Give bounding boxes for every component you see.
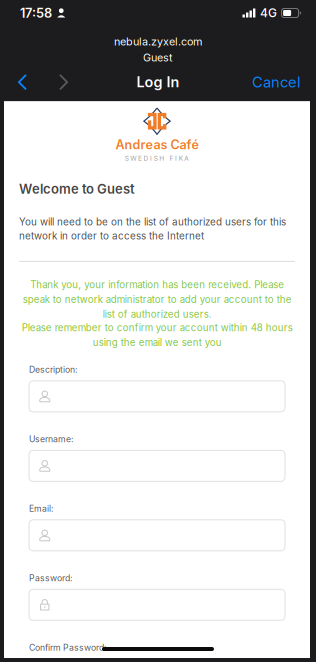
staticText: Email: [29,503,53,514]
staticText: Please remember to confirm your account … [21,322,292,348]
staticText: Andreas Café [115,137,198,152]
button[interactable]: Forward [44,67,84,97]
staticText: Log In [136,73,179,91]
staticText: 17:58 [20,5,52,21]
button[interactable]: Cancel [252,67,316,97]
staticText: Thank you, your information has been rec… [22,279,291,320]
staticText: Password: [29,573,72,583]
staticText: SWEDISH FIKA [125,154,189,162]
staticText: You will need to be on the list of autho… [19,216,286,242]
staticText: Welcome to Guest [19,181,135,197]
staticText: nebula.zyxel.com [114,35,202,48]
staticText: Confirm Password: [29,642,106,653]
staticText: Username: [29,434,73,444]
staticText: 4G [260,6,277,20]
button[interactable]: Back [0,67,44,97]
staticText: Guest [143,51,173,64]
staticText: Description: [29,364,77,375]
staticText: Cancel [252,73,301,91]
